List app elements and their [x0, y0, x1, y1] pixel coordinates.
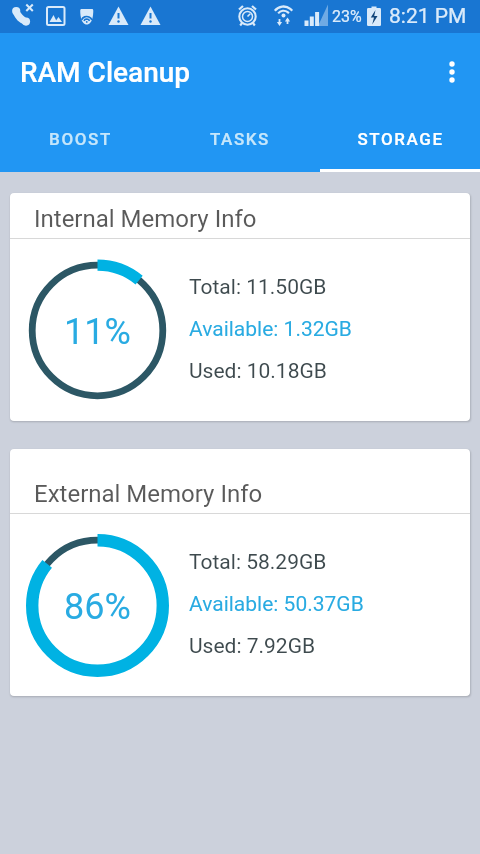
staticText: Used: 7.92GB: [189, 634, 316, 659]
staticText: 8:21 PM: [389, 4, 467, 29]
staticText: Internal Memory Info: [34, 205, 257, 233]
staticText: Used: 10.18GB: [189, 359, 327, 384]
button[interactable]: More options: [428, 48, 476, 96]
staticText: TASKS: [210, 129, 270, 149]
staticText: Total: 11.50GB: [189, 275, 327, 300]
staticText: RAM Cleanup: [20, 56, 191, 89]
button[interactable]: Internal Memory Info: [10, 193, 470, 421]
staticText: 23%: [332, 7, 362, 26]
button[interactable]: STORAGE: [320, 110, 480, 172]
staticText: Available: 1.32GB: [189, 317, 352, 342]
staticText: STORAGE: [357, 129, 444, 149]
staticText: Available: 50.37GB: [189, 592, 364, 617]
staticText: BOOST: [49, 129, 112, 149]
button[interactable]: BOOST: [0, 110, 160, 172]
staticText: External Memory Info: [34, 480, 263, 508]
staticText: Total: 58.29GB: [189, 550, 327, 575]
staticText: 11%: [64, 311, 131, 353]
button[interactable]: External Memory Info: [10, 449, 470, 696]
staticText: 86%: [64, 586, 131, 628]
button[interactable]: TASKS: [160, 110, 320, 172]
